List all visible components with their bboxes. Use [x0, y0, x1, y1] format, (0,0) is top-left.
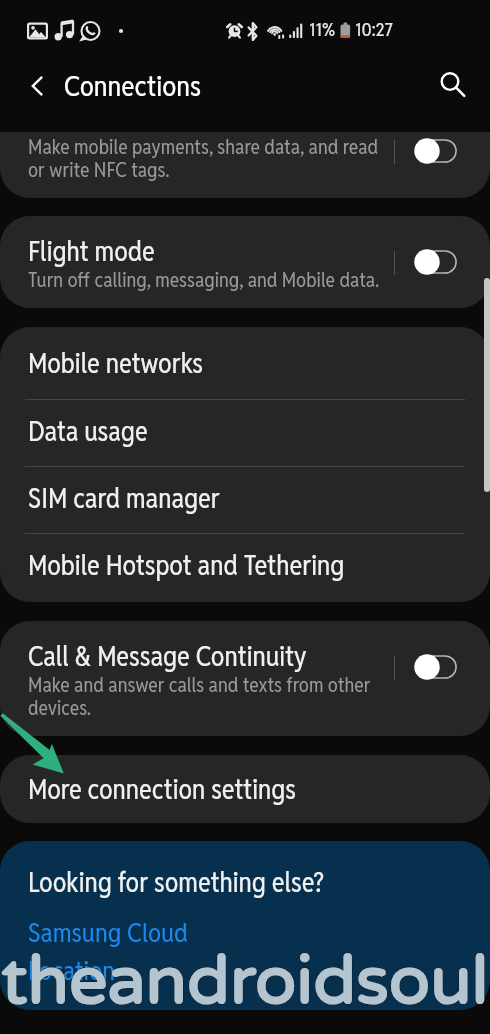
button[interactable]: Toggle switch, off	[415, 655, 457, 679]
button[interactable]: Location	[28, 954, 116, 988]
staticText: Mobile networks	[28, 346, 204, 381]
button[interactable]: SIM card manager	[0, 467, 490, 533]
staticText: Data usage	[28, 414, 148, 449]
button[interactable]: Flight mode	[0, 216, 490, 308]
button[interactable]: Call & Message Continuity	[0, 621, 490, 736]
staticText: 10:27	[355, 18, 393, 41]
button[interactable]: Make mobile payments, share data, and re…	[0, 132, 490, 198]
staticText: Turn off calling, messaging, and Mobile …	[28, 267, 396, 293]
staticText: Call & Message Continuity	[28, 639, 396, 674]
staticText: Mobile Hotspot and Tethering	[28, 548, 345, 583]
staticText: Looking for something else?	[28, 865, 324, 900]
staticText: SIM card manager	[28, 481, 220, 516]
staticText: More connection settings	[28, 772, 297, 807]
staticText: 11%	[309, 18, 336, 41]
button[interactable]: Toggle switch, off	[415, 139, 457, 163]
button[interactable]: Data usage	[0, 400, 490, 466]
staticText: theandroidsoul	[0, 941, 490, 1023]
button[interactable]: Mobile Hotspot and Tethering	[0, 534, 490, 600]
button[interactable]: Mobile networks	[0, 332, 490, 399]
staticText: Make mobile payments, share data, and re…	[28, 134, 396, 183]
staticText: Connections	[64, 68, 202, 104]
staticText: theandroidsoul	[0, 941, 490, 1023]
staticText: theandroidsoul	[0, 941, 490, 1023]
staticText: Make and answer calls and texts from oth…	[28, 672, 396, 721]
button[interactable]: More connection settings	[0, 755, 490, 823]
staticText: Flight mode	[28, 234, 396, 269]
button[interactable]: Search	[429, 61, 477, 109]
button[interactable]: Samsung Cloud	[28, 916, 188, 950]
button[interactable]: Toggle switch, off	[415, 250, 457, 274]
button[interactable]: Navigate up	[14, 62, 62, 110]
